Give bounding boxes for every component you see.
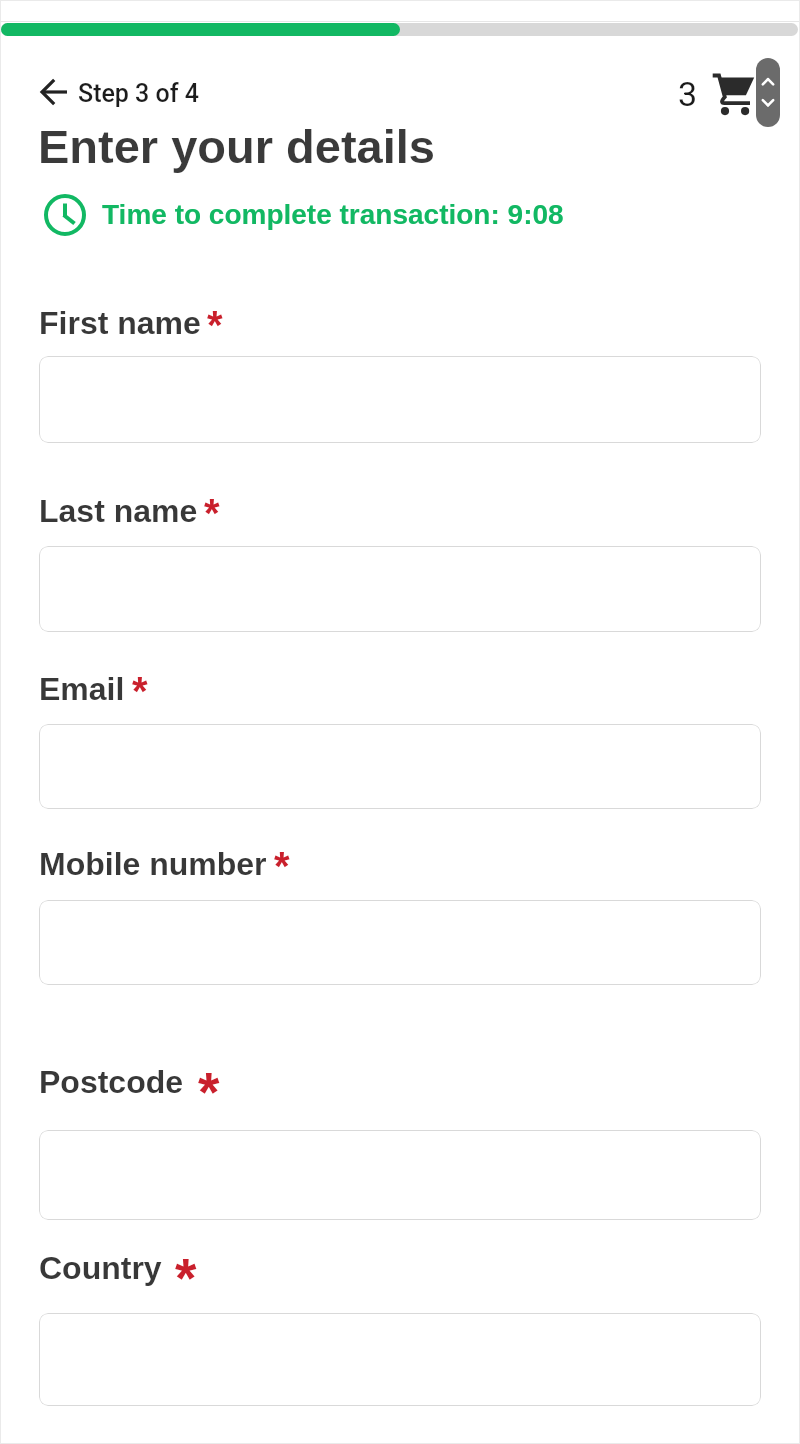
staticText: Enter your details (38, 120, 435, 173)
staticText: 3 (678, 74, 698, 114)
button[interactable] (39, 1313, 761, 1406)
staticText: * (132, 669, 148, 714)
button[interactable] (39, 900, 761, 985)
staticText: * (204, 491, 220, 536)
staticText: * (274, 844, 290, 889)
staticText: First name (39, 305, 201, 341)
staticText: Time to complete transaction: 9:08 (102, 199, 564, 230)
other: Back (40, 78, 70, 106)
staticText: Country (39, 1250, 162, 1286)
button[interactable] (39, 356, 761, 443)
button[interactable] (39, 1130, 761, 1220)
button[interactable] (39, 546, 761, 632)
button[interactable]: Back (38, 76, 204, 110)
staticText: * (207, 303, 223, 348)
button[interactable]: Scroll (756, 58, 780, 127)
staticText: Postcode (39, 1064, 184, 1100)
staticText: Mobile number (39, 846, 267, 882)
button[interactable]: Shopping cart (708, 70, 760, 120)
staticText: Last name (39, 493, 198, 529)
staticText: Step 3 of 4 (78, 79, 199, 108)
staticText: * (175, 1247, 197, 1308)
staticText: Email (39, 671, 125, 707)
button[interactable] (39, 724, 761, 809)
staticText: * (198, 1061, 220, 1122)
